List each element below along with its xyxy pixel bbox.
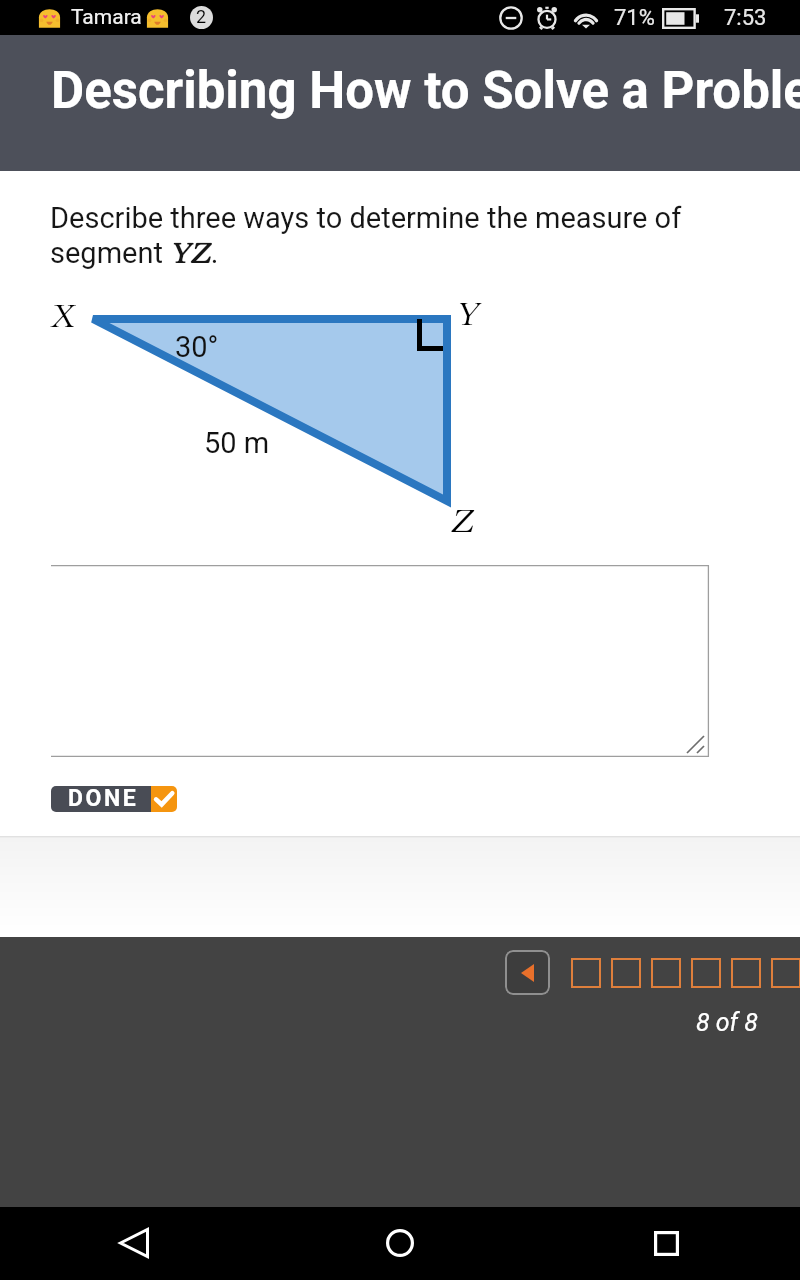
staticText: Describing How to Solve a Problem (51, 61, 800, 121)
staticText: Describe three ways to determine the mea… (50, 201, 682, 273)
button[interactable]: Recents (642, 1219, 690, 1267)
staticText: 71% (614, 5, 655, 31)
button[interactable]: Back (110, 1219, 158, 1267)
button[interactable]: Home (376, 1219, 424, 1267)
staticText: 7:53 (724, 5, 767, 31)
staticText: 8 of 8 (696, 1008, 758, 1037)
button[interactable]: Question marker (731, 958, 761, 988)
staticText: 2 (196, 6, 207, 27)
button[interactable]: DONE (51, 786, 177, 812)
button[interactable]: Question marker (691, 958, 721, 988)
staticText: 50 m (204, 426, 270, 460)
staticText: Z (451, 500, 475, 543)
staticText: Y (456, 293, 480, 336)
staticText: DONE (68, 786, 139, 811)
staticText: 30° (175, 330, 219, 364)
button[interactable]: Answer text field (51, 565, 709, 757)
button[interactable]: Question marker (771, 958, 800, 988)
button[interactable]: Question marker (571, 958, 601, 988)
staticText: X (50, 295, 75, 338)
button[interactable]: Previous question (505, 950, 550, 995)
button[interactable]: Question marker (651, 958, 681, 988)
staticText: Tamara (71, 5, 142, 30)
button[interactable]: Question marker (611, 958, 641, 988)
